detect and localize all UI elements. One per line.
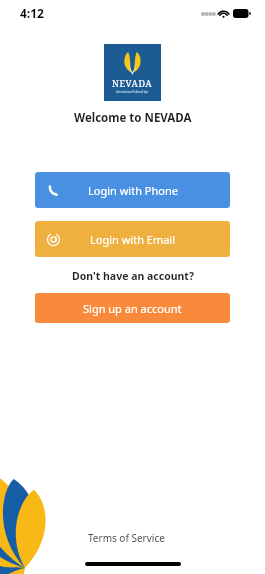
other: Email (46, 232, 61, 247)
button[interactable]: Login with Email (35, 221, 230, 257)
button[interactable]: Sign up an account (35, 293, 230, 323)
other: Phone (46, 183, 60, 197)
staticText: Terms of Service (88, 531, 165, 545)
button[interactable]: Login with Phone (35, 172, 230, 208)
staticText: International Cultural Spa (116, 90, 149, 94)
button[interactable]: Terms of Service (88, 531, 165, 545)
staticText: Welcome to NEVADA (74, 110, 192, 126)
staticText: Login with Phone (88, 183, 178, 198)
staticText: 4:12 (20, 5, 44, 21)
staticText: NEVADA (112, 77, 153, 89)
staticText: Don't have an account? (72, 269, 194, 283)
staticText: Login with Email (90, 232, 176, 247)
staticText: Sign up an account (83, 301, 182, 316)
